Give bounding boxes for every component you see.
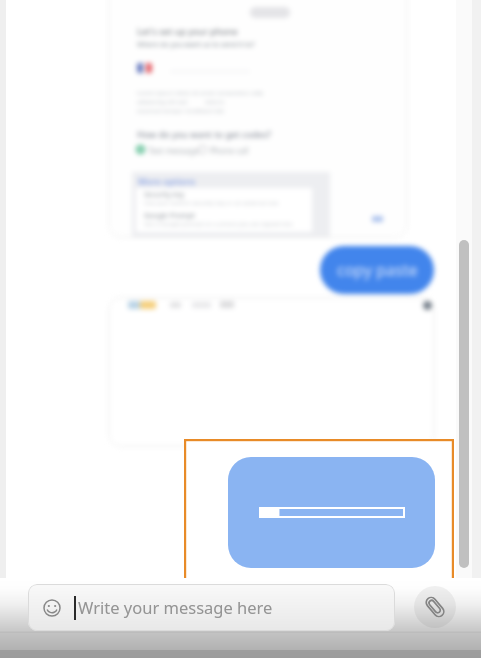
staticText: Security key [144, 190, 185, 200]
button[interactable] [108, 297, 435, 447]
button[interactable]: Write your message here [28, 584, 395, 631]
staticText: Write your message here [78, 596, 273, 618]
button[interactable] [184, 439, 454, 586]
staticText: Text message [148, 145, 200, 156]
button[interactable]: Scroll [459, 240, 469, 568]
staticText: Phone call [210, 145, 249, 156]
staticText: More options [138, 175, 196, 187]
staticText: How do you want to get codes? [137, 128, 272, 140]
button[interactable] [108, 0, 408, 238]
staticText: copy paste [337, 259, 418, 281]
staticText: Google Prompt [144, 211, 195, 221]
staticText: Where do you want us to send it to? [137, 40, 255, 50]
staticText: Let's set up your phone [137, 25, 238, 37]
button[interactable]: Attach file [414, 586, 456, 628]
button[interactable] [228, 457, 435, 568]
button[interactable]: copy paste [320, 246, 434, 294]
